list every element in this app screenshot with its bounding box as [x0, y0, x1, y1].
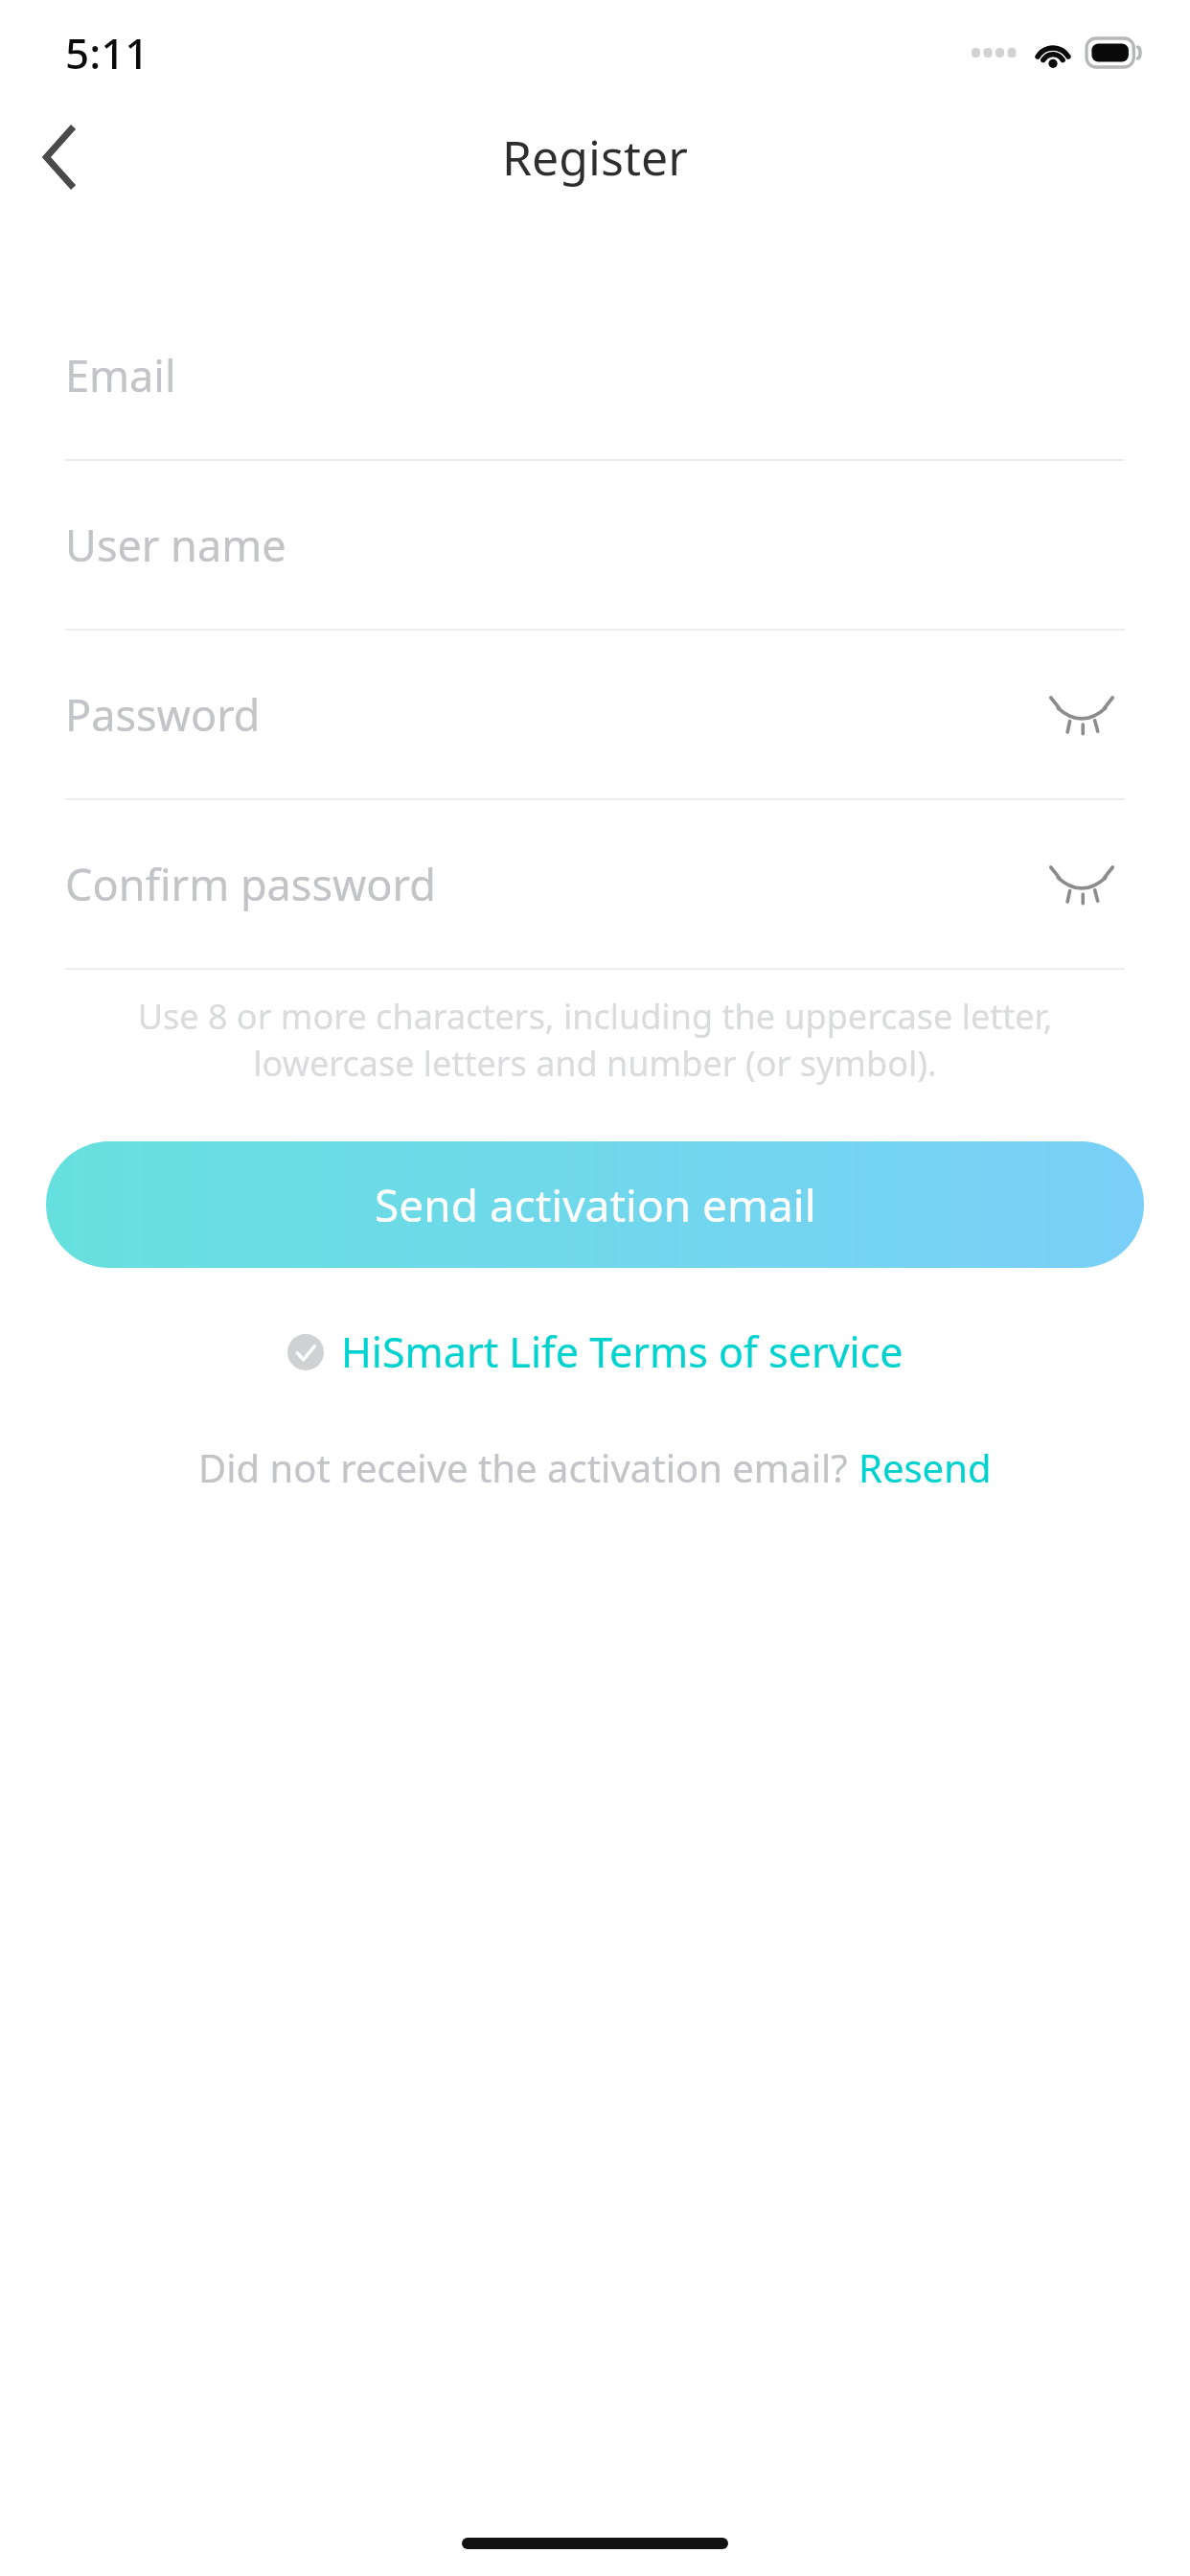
button[interactable]: Confirm password: [65, 800, 1125, 970]
staticText: Confirm password: [65, 855, 436, 913]
staticText: Email: [65, 346, 176, 404]
button[interactable]: HiSmart Life Terms of service: [287, 1323, 904, 1380]
staticText: User name: [65, 516, 286, 574]
staticText: Use 8 or more characters, including the …: [54, 993, 1136, 1086]
button[interactable]: Show password: [1039, 841, 1125, 928]
button[interactable]: Send activation email: [46, 1141, 1144, 1268]
button[interactable]: Show password: [1039, 672, 1125, 758]
button[interactable]: Password: [65, 631, 1125, 800]
staticText: Did not receive the activation email?: [198, 1441, 858, 1493]
staticText: Send activation email: [375, 1175, 816, 1235]
staticText: HiSmart Life Terms of service: [341, 1323, 904, 1380]
button[interactable]: Resend: [858, 1441, 992, 1493]
button[interactable]: User name: [65, 461, 1125, 631]
staticText: 5:11: [65, 24, 149, 81]
staticText: Register: [502, 125, 688, 190]
button[interactable]: Back: [13, 111, 105, 203]
staticText: Resend: [858, 1441, 992, 1493]
staticText: Password: [65, 685, 261, 744]
button[interactable]: Email: [65, 291, 1125, 461]
